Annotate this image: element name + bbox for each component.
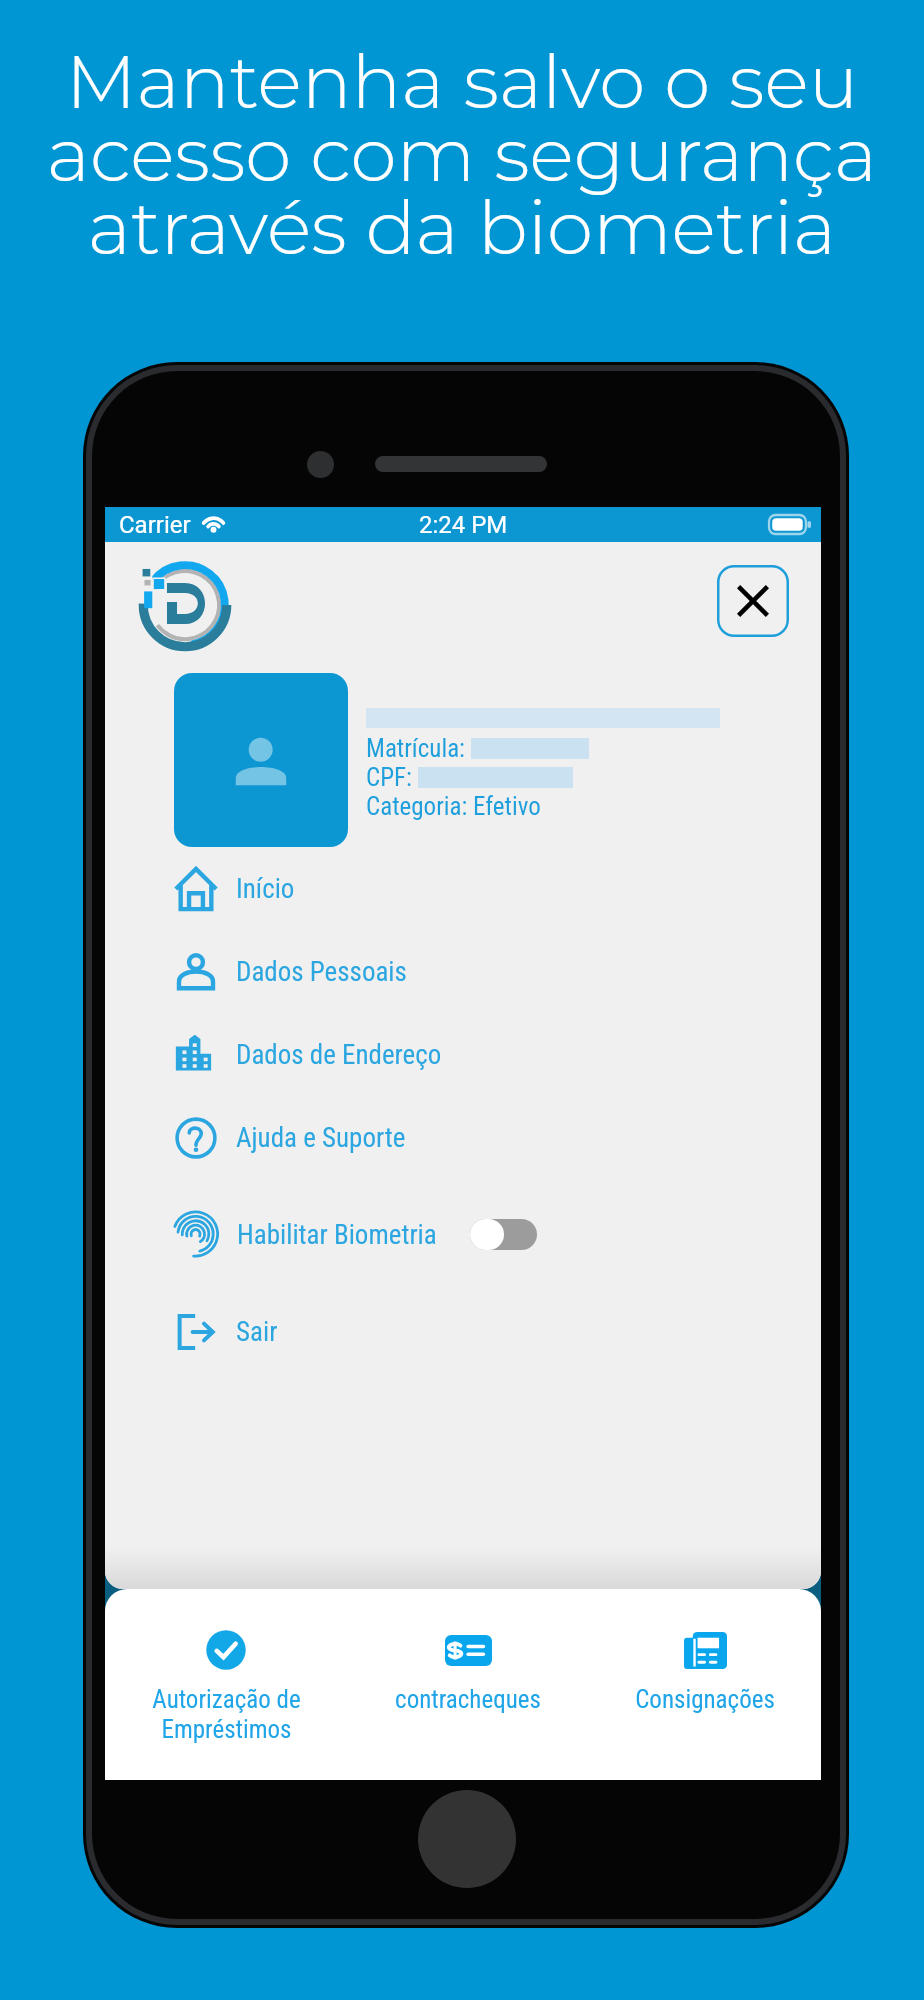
button[interactable]: Autorização de Empréstimos <box>111 1589 341 1744</box>
button[interactable]: Dados Pessoais <box>105 930 821 1013</box>
staticText: Habilitar Biometria <box>237 1219 437 1251</box>
button[interactable]: Sair <box>105 1290 821 1373</box>
staticText: Início <box>236 873 295 905</box>
button[interactable]: Fechar <box>717 565 789 637</box>
button[interactable]: Ajuda e Suporte <box>105 1096 821 1179</box>
button[interactable]: Habilitar Biometria <box>105 1179 821 1290</box>
button[interactable]: Dados de Endereço <box>105 1013 821 1096</box>
staticText: 2:24 PM <box>419 511 508 539</box>
staticText: Consignações <box>635 1685 775 1714</box>
button[interactable]: contracheques <box>353 1589 583 1714</box>
staticText: CPF: <box>366 763 418 792</box>
button[interactable]: Início <box>105 847 821 930</box>
button[interactable]: Consignações <box>590 1589 820 1714</box>
staticText: Dados Pessoais <box>236 956 407 988</box>
staticText: Categoria: Efetivo <box>366 792 541 821</box>
staticText: Dados de Endereço <box>236 1039 442 1071</box>
staticText: Sair <box>236 1316 278 1348</box>
staticText: Autorização de Empréstimos <box>152 1685 301 1744</box>
staticText: contracheques <box>395 1685 541 1714</box>
staticText: Carrier <box>119 511 191 539</box>
staticText: Ajuda e Suporte <box>236 1122 406 1154</box>
staticText: Mantenha salvo o seu acesso com seguranç… <box>0 36 924 273</box>
staticText: Matrícula: <box>366 734 471 763</box>
